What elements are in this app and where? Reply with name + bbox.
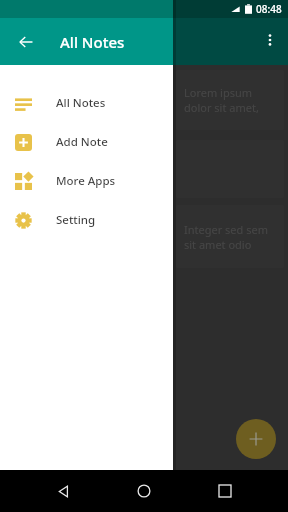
button[interactable]: Back xyxy=(45,473,81,509)
button[interactable]: All Notes xyxy=(0,83,173,122)
staticText: All Notes xyxy=(60,32,125,52)
staticText: All Notes xyxy=(56,95,106,111)
button[interactable]: More Apps xyxy=(0,161,173,200)
staticText: More Apps xyxy=(56,173,116,189)
staticText: 08:48 xyxy=(256,2,282,16)
staticText: Setting xyxy=(56,212,96,228)
staticText: Lorem ipsum dolor sit amet, consectetur … xyxy=(184,85,276,115)
button[interactable]: Recents xyxy=(207,473,243,509)
button[interactable]: Home xyxy=(126,473,162,509)
button[interactable]: Lorem ipsum dolor sit amet, consectetur … xyxy=(176,70,284,130)
button[interactable]: Add Note xyxy=(0,122,173,161)
button[interactable]: Add note xyxy=(236,419,276,459)
button[interactable]: Integer sed sem sit amet odio sodales la… xyxy=(176,205,284,268)
staticText: Add Note xyxy=(56,134,108,150)
staticText: Integer sed sem sit amet odio sodales la… xyxy=(184,222,276,252)
button[interactable]: More options xyxy=(252,22,288,58)
button[interactable]: Back xyxy=(8,24,44,60)
button[interactable]: Setting xyxy=(0,200,173,239)
